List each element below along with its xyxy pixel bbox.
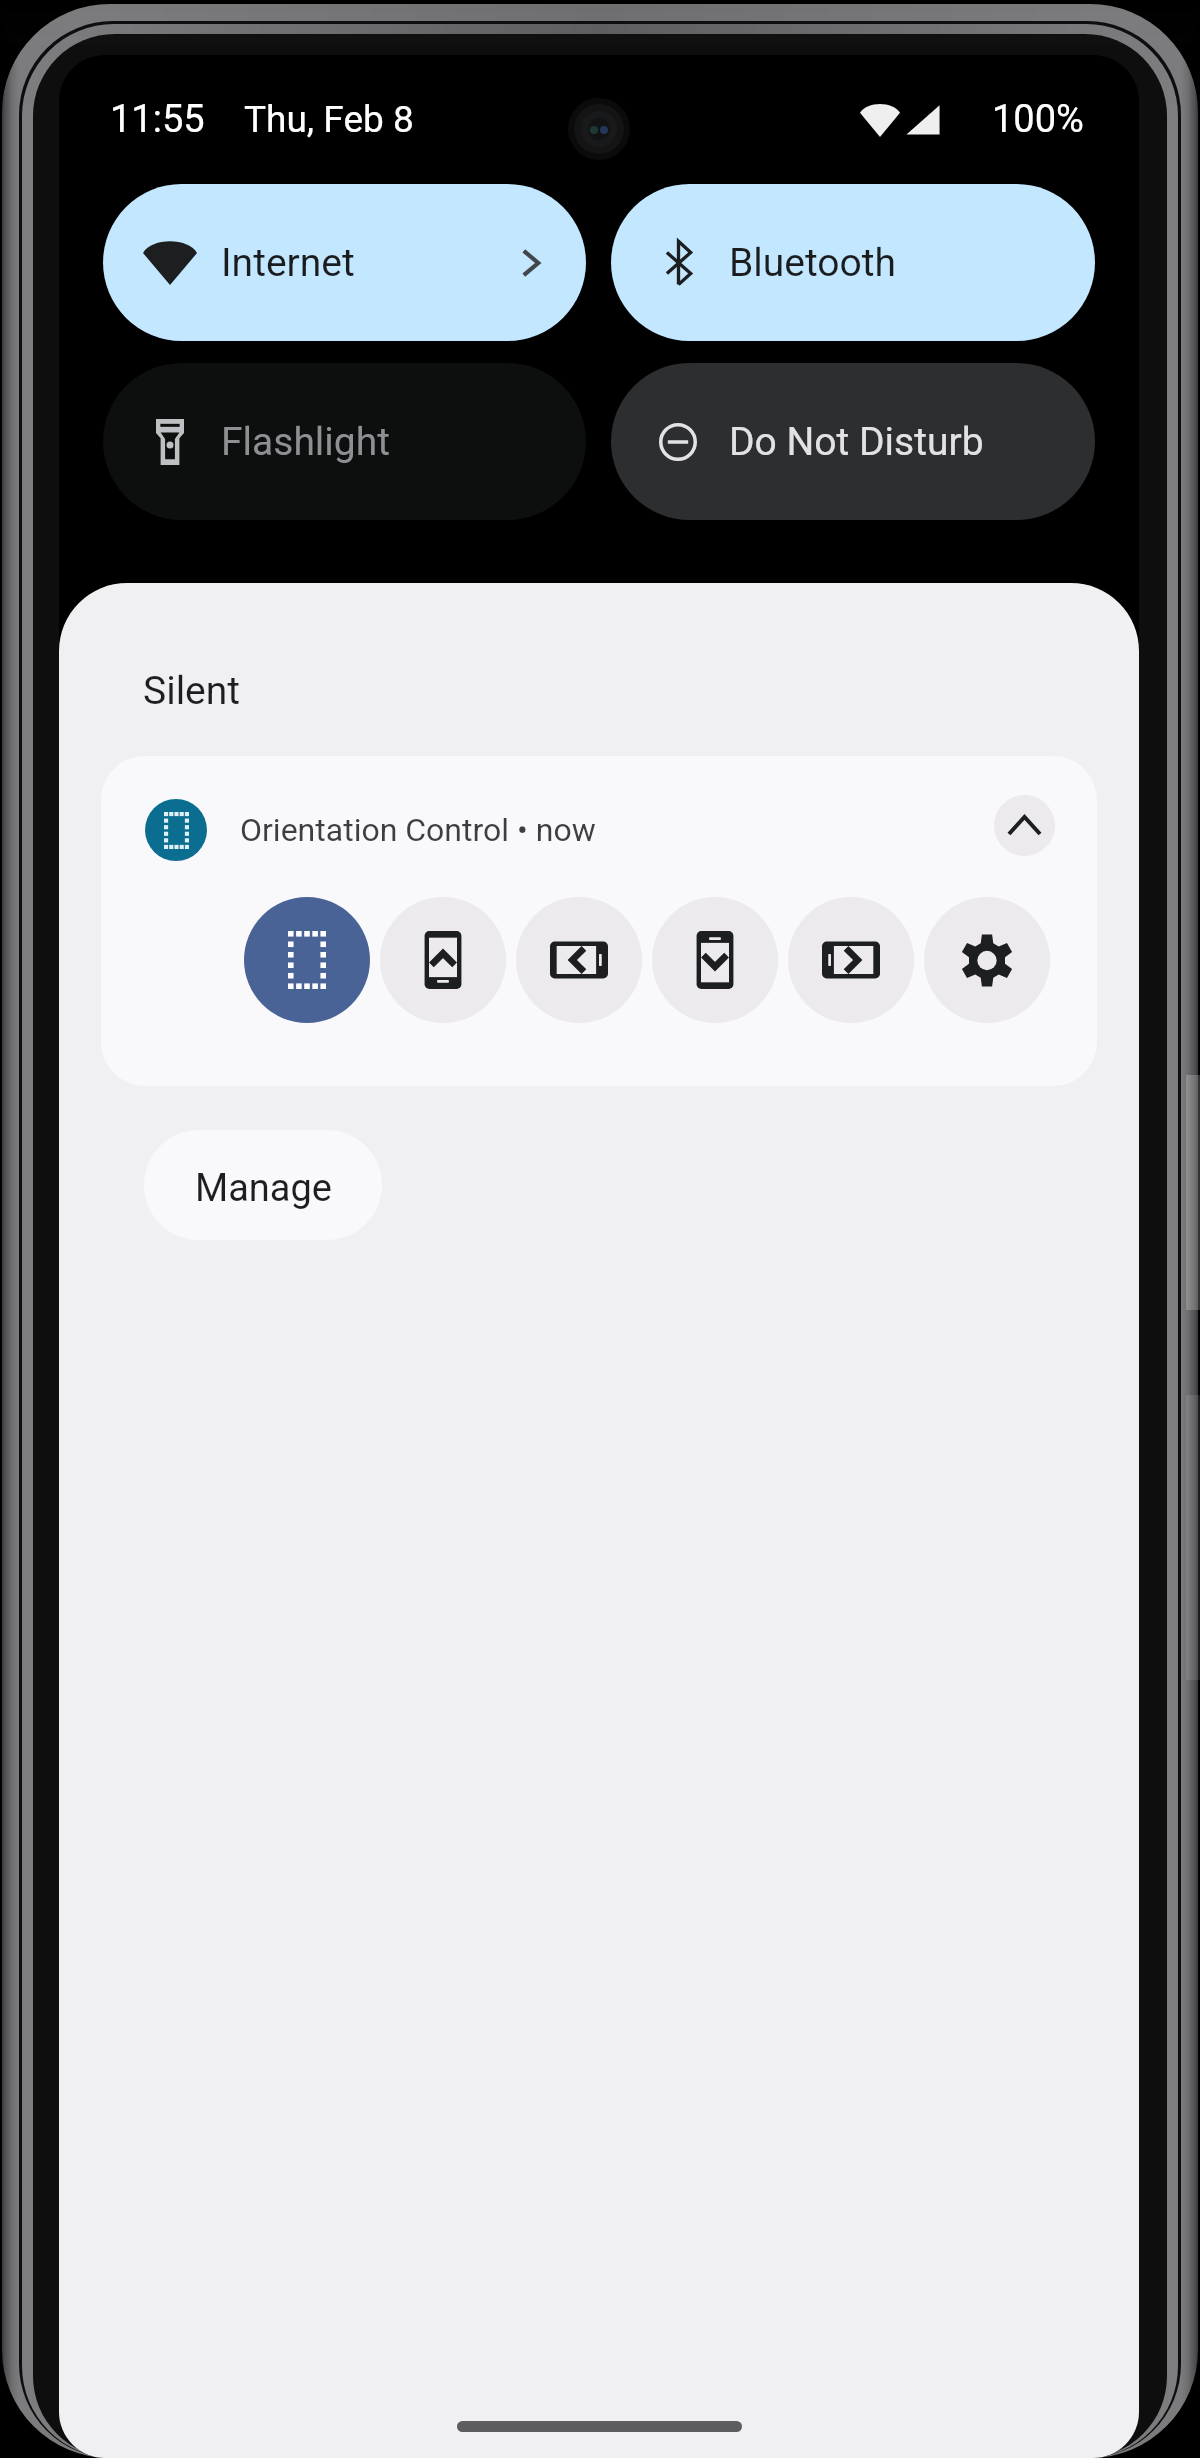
button[interactable]: Flashlight — [103, 363, 586, 520]
staticText: Do Not Disturb — [729, 419, 984, 465]
staticText: Flashlight — [221, 419, 390, 465]
button[interactable]: Force landscape left — [516, 897, 642, 1023]
button[interactable]: Do Not Disturb — [611, 363, 1095, 520]
button[interactable]: Force portrait — [380, 897, 506, 1023]
button[interactable]: Manage — [144, 1130, 382, 1240]
staticText: Thu, Feb 8 — [244, 98, 414, 141]
button[interactable]: Orientation Control • now — [101, 756, 1097, 1086]
staticText: 11:55 — [110, 97, 205, 142]
button[interactable]: Bluetooth — [611, 184, 1095, 341]
button[interactable]: Auto rotate — [244, 897, 370, 1023]
staticText: Bluetooth — [729, 240, 897, 286]
button[interactable]: Settings — [924, 897, 1050, 1023]
staticText: Orientation Control • now — [240, 811, 596, 849]
staticText: 100% — [992, 97, 1084, 142]
staticText: Internet — [221, 240, 355, 286]
button[interactable]: Collapse notification — [994, 795, 1055, 856]
button[interactable]: Force landscape right — [788, 897, 914, 1023]
button[interactable]: Internet — [103, 184, 586, 341]
button[interactable]: Force reverse portrait — [652, 897, 778, 1023]
button[interactable]: Open internet settings — [522, 249, 540, 277]
staticText: Manage — [195, 1166, 332, 1211]
staticText: Silent — [143, 668, 241, 714]
